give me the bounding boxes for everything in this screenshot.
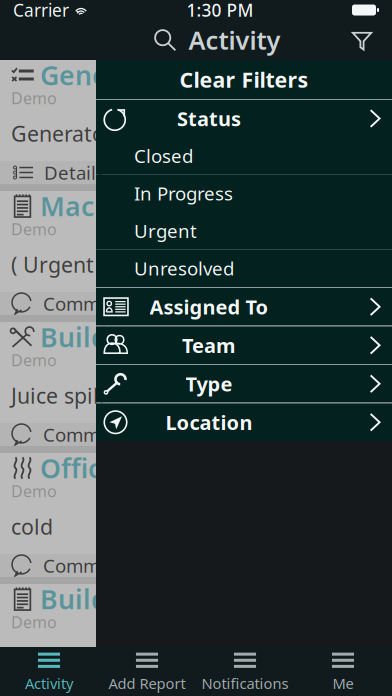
staticText: Demo (11, 480, 57, 502)
staticText: Details (44, 160, 105, 185)
button[interactable]: Team (96, 326, 392, 364)
button[interactable]: Urgent (96, 212, 392, 249)
staticText: Comment (43, 684, 130, 696)
staticText: 1:30 PM (186, 0, 253, 21)
staticText: Generator (40, 57, 174, 93)
staticText: Type (185, 370, 232, 397)
staticText: Carrier (13, 0, 69, 21)
button[interactable]: Assigned To (96, 288, 392, 325)
button[interactable]: Me (294, 647, 392, 696)
button[interactable]: Notifications (196, 647, 294, 696)
staticText: ( Urgent ) F (11, 643, 123, 672)
staticText: Comment (43, 291, 130, 316)
staticText: Demo (11, 87, 57, 109)
staticText: Add Report (108, 673, 185, 693)
staticText: Machine (40, 188, 152, 224)
staticText: Assigned To (149, 293, 268, 320)
staticText: ( Urgent ) Trip ha (11, 250, 182, 279)
staticText: Activity (188, 23, 280, 57)
staticText: Comment (43, 553, 130, 578)
staticText: Location (165, 409, 252, 436)
staticText: Generator & Gro (11, 119, 179, 148)
staticText: Team (182, 332, 236, 359)
staticText: Building (40, 581, 150, 617)
button[interactable]: Activity (0, 647, 98, 696)
staticText: Closed (134, 143, 193, 168)
button[interactable]: Type (96, 365, 392, 402)
staticText: Urgent (134, 218, 197, 243)
button[interactable]: In Progress (96, 174, 392, 212)
staticText: Clear Filters (179, 65, 308, 94)
button[interactable]: Location (96, 403, 392, 441)
staticText: Me (332, 673, 353, 693)
staticText: Notifications (201, 673, 288, 693)
staticText: Activity (25, 673, 73, 693)
staticText: Building (40, 319, 150, 355)
staticText: Office 1 (40, 450, 139, 486)
button[interactable]: Closed (96, 137, 392, 174)
staticText: cold (11, 512, 53, 541)
staticText: Demo (11, 611, 57, 633)
button[interactable]: Status (96, 100, 392, 137)
button[interactable]: Clear Filters (96, 60, 392, 99)
button[interactable]: Unresolved (96, 249, 392, 287)
button[interactable]: Filter (342, 20, 382, 60)
button[interactable]: Add Report (98, 647, 196, 696)
staticText: Juice spill (11, 381, 105, 410)
staticText: Demo (11, 349, 57, 371)
staticText: Comment (43, 422, 130, 447)
staticText: Unresolved (134, 256, 234, 281)
staticText: Status (177, 105, 241, 132)
staticText: Demo (11, 218, 57, 240)
staticText: In Progress (134, 181, 233, 206)
